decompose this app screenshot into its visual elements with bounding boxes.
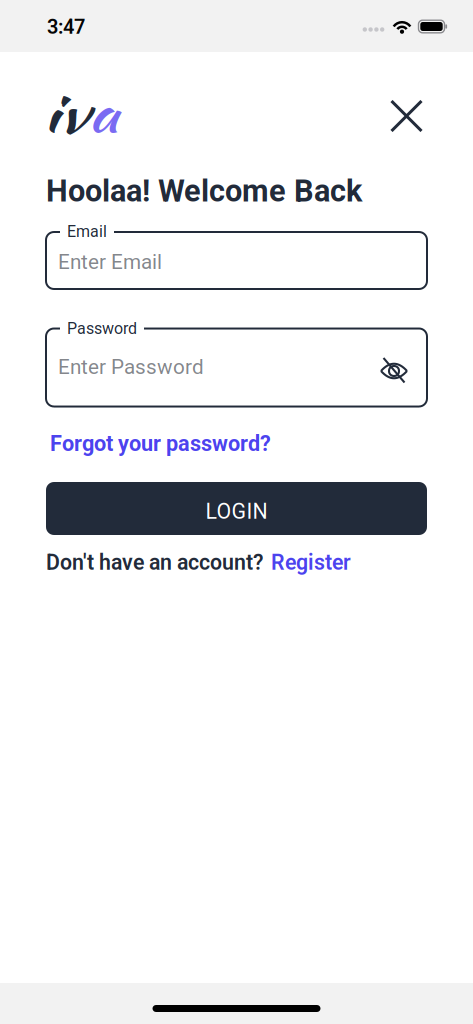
button[interactable]: Show password [377,355,411,385]
button[interactable]: Close [384,94,428,138]
staticText: a [83,70,111,155]
staticText: Hoolaa! Welcome Back [46,173,362,209]
staticText: Enter Password [58,355,204,379]
button[interactable]: Forgot your password? [50,431,271,456]
staticText: 3:47 [47,15,85,39]
staticText: iv [43,70,83,155]
staticText: LOGIN [205,499,267,524]
staticText: Forgot your password? [50,431,271,456]
button[interactable]: LOGIN [46,482,427,535]
staticText: Password [67,319,137,338]
staticText: Email [67,222,107,241]
button[interactable]: Register [271,550,351,575]
staticText: Don't have an account? [46,550,264,575]
staticText: Enter Email [58,250,162,274]
staticText: Register [271,550,351,575]
